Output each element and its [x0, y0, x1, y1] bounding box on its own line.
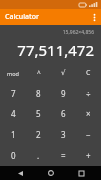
staticText: 0 — [11, 150, 16, 161]
button[interactable]: C — [76, 63, 101, 83]
button[interactable]: More options — [88, 9, 101, 25]
staticText: mod — [7, 70, 19, 77]
button[interactable]: Back — [9, 166, 31, 180]
staticText: 15,962×4,856 — [62, 29, 94, 36]
button[interactable]: = — [51, 145, 76, 166]
button[interactable]: 8 — [26, 83, 51, 103]
staticText: 6 — [61, 108, 66, 119]
staticText: × — [86, 108, 91, 119]
staticText: 77,511,472 — [17, 40, 94, 60]
button[interactable]: √ — [51, 63, 76, 83]
staticText: − — [86, 129, 91, 140]
button[interactable]: − — [76, 124, 101, 145]
button[interactable]: 9 — [51, 83, 76, 103]
button[interactable]: ÷ — [76, 83, 101, 103]
staticText: √ — [61, 69, 66, 77]
button[interactable]: . — [26, 145, 51, 166]
staticText: 9 — [61, 88, 66, 99]
staticText: Calculator — [5, 12, 39, 22]
staticText: 5 — [36, 108, 41, 119]
button[interactable]: + — [76, 145, 101, 166]
staticText: . — [37, 150, 40, 161]
button[interactable]: 1 — [0, 124, 26, 145]
staticText: 7 — [11, 88, 16, 99]
staticText: + — [86, 150, 91, 161]
button[interactable]: 2 — [26, 124, 51, 145]
staticText: 1 — [11, 129, 16, 140]
button[interactable]: ^ — [26, 63, 51, 83]
staticText: 8 — [36, 88, 41, 99]
button[interactable]: 7 — [0, 83, 26, 103]
staticText: ^ — [37, 69, 41, 78]
staticText: = — [61, 150, 66, 161]
button[interactable]: × — [76, 103, 101, 124]
button[interactable]: 0 — [0, 145, 26, 166]
button[interactable]: mod — [0, 63, 26, 83]
staticText: 2 — [36, 129, 41, 140]
button[interactable]: 3 — [51, 124, 76, 145]
button[interactable]: 4 — [0, 103, 26, 124]
staticText: ÷ — [86, 88, 91, 99]
staticText: C — [86, 68, 91, 78]
button[interactable]: Recent apps — [70, 166, 92, 180]
staticText: 3 — [61, 129, 66, 140]
staticText: 4 — [11, 108, 16, 119]
button[interactable]: Home — [40, 166, 62, 180]
button[interactable]: 6 — [51, 103, 76, 124]
button[interactable]: 5 — [26, 103, 51, 124]
